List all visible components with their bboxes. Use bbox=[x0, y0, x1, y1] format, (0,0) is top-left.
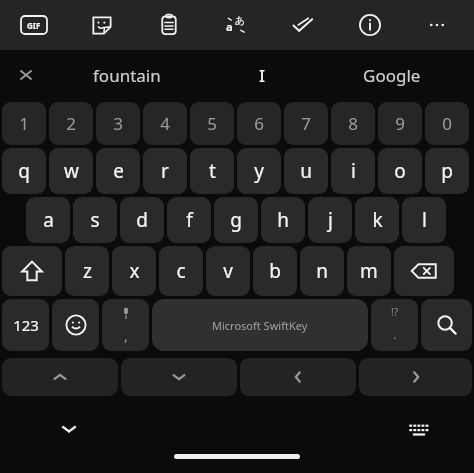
button[interactable]: o bbox=[378, 148, 422, 194]
staticText: o bbox=[394, 158, 406, 184]
button[interactable]: 4 bbox=[143, 102, 187, 145]
staticText: !? bbox=[391, 305, 399, 319]
staticText: z bbox=[83, 258, 92, 284]
button[interactable]: Symbols bbox=[2, 299, 49, 351]
staticText: GIF bbox=[27, 20, 41, 31]
button[interactable]: Period and punctuation bbox=[371, 299, 418, 351]
staticText: y bbox=[254, 158, 264, 184]
staticText: w bbox=[64, 158, 79, 184]
button[interactable]: Search bbox=[421, 299, 472, 351]
staticText: r bbox=[161, 158, 169, 184]
button[interactable]: Move right bbox=[359, 358, 472, 396]
button[interactable]: n bbox=[300, 246, 344, 296]
button[interactable]: g bbox=[214, 197, 258, 243]
button[interactable]: i bbox=[331, 148, 375, 194]
button[interactable]: Move left bbox=[240, 358, 356, 396]
button[interactable]: 1 bbox=[2, 102, 46, 145]
staticText: k bbox=[372, 207, 383, 233]
button[interactable]: Stickers bbox=[68, 0, 135, 50]
staticText: n bbox=[316, 258, 328, 284]
button[interactable]: v bbox=[206, 246, 250, 296]
staticText: I bbox=[259, 64, 266, 87]
button[interactable]: x bbox=[112, 246, 156, 296]
staticText: a bbox=[43, 207, 54, 233]
button[interactable]: Hide keyboard bbox=[52, 412, 86, 446]
staticText: v bbox=[223, 258, 233, 284]
staticText: d bbox=[136, 207, 148, 233]
button[interactable]: Clipboard bbox=[135, 0, 202, 50]
button[interactable]: z bbox=[65, 246, 109, 296]
staticText: s bbox=[90, 207, 100, 233]
button[interactable]: Voice input and comma bbox=[102, 299, 149, 351]
button[interactable]: 3 bbox=[96, 102, 140, 145]
button[interactable]: m bbox=[347, 246, 391, 296]
staticText: 123 bbox=[13, 315, 39, 335]
button[interactable]: 7 bbox=[284, 102, 328, 145]
staticText: j bbox=[328, 207, 333, 233]
button[interactable]: 6 bbox=[237, 102, 281, 145]
button[interactable]: k bbox=[355, 197, 399, 243]
button[interactable]: I bbox=[202, 50, 322, 100]
staticText: b bbox=[269, 258, 281, 284]
button[interactable]: Google bbox=[322, 50, 462, 100]
button[interactable]: Change keyboard bbox=[402, 412, 436, 446]
staticText: 6 bbox=[254, 112, 264, 135]
staticText: 1 bbox=[19, 112, 29, 135]
button[interactable]: h bbox=[261, 197, 305, 243]
button[interactable]: t bbox=[190, 148, 234, 194]
staticText: i bbox=[351, 158, 356, 184]
button[interactable]: e bbox=[96, 148, 140, 194]
staticText: h bbox=[277, 207, 289, 233]
button[interactable]: Close suggestions bbox=[0, 50, 52, 100]
staticText: Microsoft SwiftKey bbox=[212, 318, 308, 333]
staticText: 4 bbox=[160, 112, 170, 135]
staticText: あ bbox=[235, 14, 246, 27]
staticText: 0 bbox=[442, 112, 452, 135]
staticText: u bbox=[300, 158, 312, 184]
button[interactable]: q bbox=[2, 148, 46, 194]
button[interactable]: GIF bbox=[0, 0, 68, 50]
button[interactable]: f bbox=[167, 197, 211, 243]
button[interactable]: 9 bbox=[378, 102, 422, 145]
button[interactable]: Move up bbox=[2, 358, 118, 396]
button[interactable]: s bbox=[73, 197, 117, 243]
button[interactable]: Move down bbox=[121, 358, 237, 396]
button[interactable]: Backspace bbox=[394, 246, 454, 296]
button[interactable]: Space bbox=[152, 299, 368, 351]
button[interactable]: r bbox=[143, 148, 187, 194]
button[interactable]: Spell check bbox=[269, 0, 336, 50]
button[interactable]: y bbox=[237, 148, 281, 194]
button[interactable]: Translate bbox=[202, 0, 269, 50]
button[interactable]: l bbox=[402, 197, 446, 243]
button[interactable]: c bbox=[159, 246, 203, 296]
button[interactable]: Info bbox=[336, 0, 403, 50]
button[interactable]: 8 bbox=[331, 102, 375, 145]
button[interactable]: 5 bbox=[190, 102, 234, 145]
staticText: Google bbox=[363, 64, 421, 87]
staticText: m bbox=[360, 258, 378, 284]
button[interactable]: a bbox=[26, 197, 70, 243]
staticText: a bbox=[226, 19, 233, 34]
staticText: g bbox=[230, 207, 242, 233]
button[interactable]: Shift bbox=[2, 246, 62, 296]
staticText: c bbox=[176, 258, 186, 284]
staticText: 8 bbox=[348, 112, 358, 135]
staticText: 9 bbox=[395, 112, 405, 135]
button[interactable]: fountain bbox=[52, 50, 202, 100]
button[interactable]: w bbox=[49, 148, 93, 194]
button[interactable]: 0 bbox=[425, 102, 469, 145]
staticText: 5 bbox=[207, 112, 217, 135]
staticText: . bbox=[393, 325, 397, 343]
button[interactable]: Emoji bbox=[52, 299, 99, 351]
staticText: t bbox=[209, 158, 216, 184]
button[interactable]: u bbox=[284, 148, 328, 194]
button[interactable]: p bbox=[425, 148, 469, 194]
button[interactable]: More options bbox=[403, 0, 470, 50]
staticText: e bbox=[113, 158, 124, 184]
staticText: 3 bbox=[113, 112, 123, 135]
button[interactable]: j bbox=[308, 197, 352, 243]
button[interactable]: b bbox=[253, 246, 297, 296]
button[interactable]: d bbox=[120, 197, 164, 243]
button[interactable]: 2 bbox=[49, 102, 93, 145]
staticText: 7 bbox=[301, 112, 311, 135]
